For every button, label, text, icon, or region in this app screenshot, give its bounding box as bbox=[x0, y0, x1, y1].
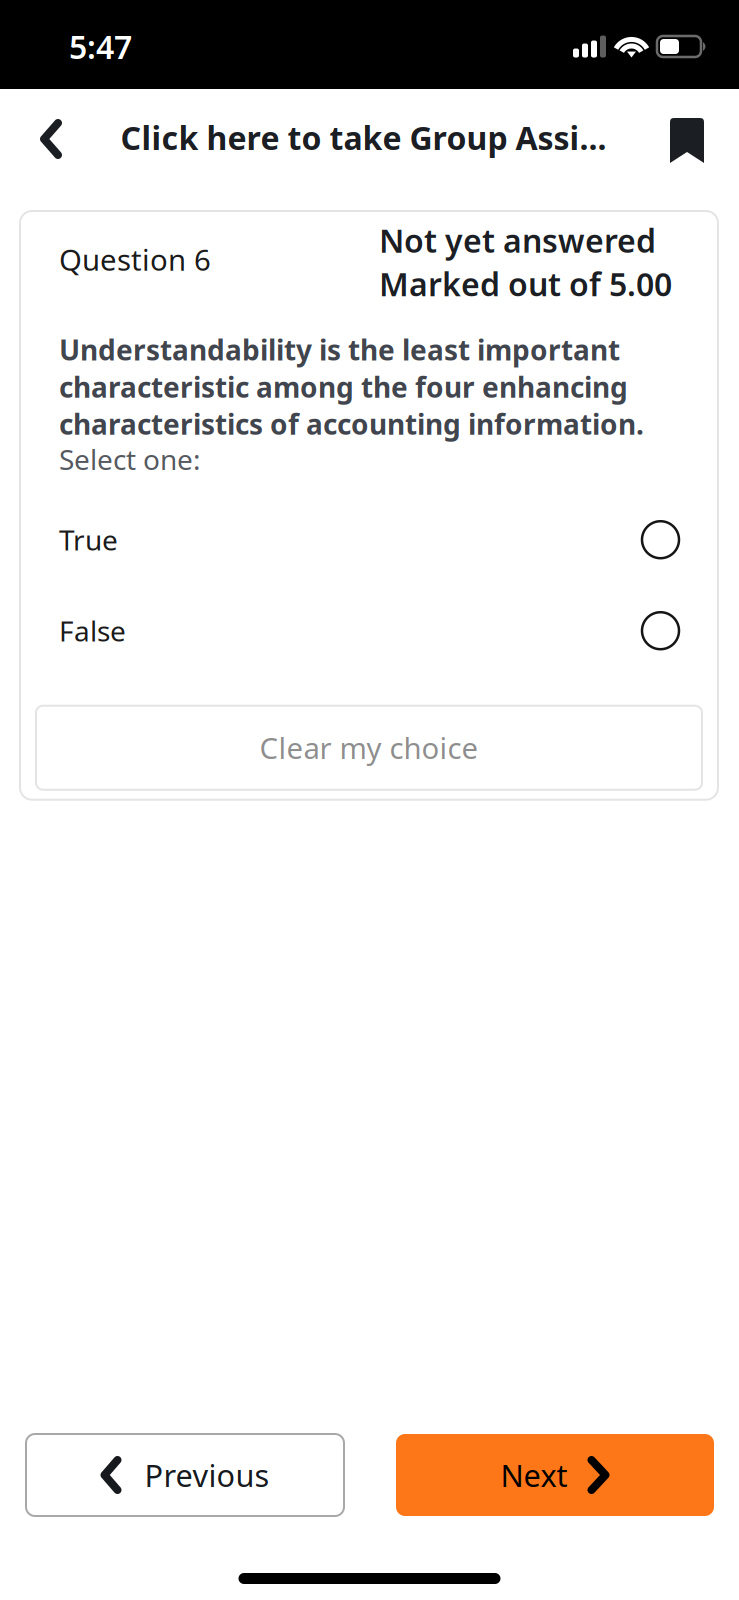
staticText: Question 6 bbox=[59, 240, 211, 279]
button[interactable]: Bookmark bbox=[635, 112, 739, 163]
button[interactable]: False bbox=[59, 606, 679, 656]
staticText: True bbox=[59, 521, 118, 558]
staticText: Clear my choice bbox=[259, 728, 478, 767]
staticText: False bbox=[59, 612, 126, 649]
button[interactable]: True bbox=[59, 515, 679, 565]
staticText: Not yet answered bbox=[379, 219, 656, 261]
staticText: 5:47 bbox=[69, 25, 132, 68]
button[interactable]: Next bbox=[396, 1434, 714, 1516]
button[interactable]: Previous bbox=[26, 1434, 344, 1516]
staticText: Marked out of 5.00 bbox=[379, 262, 672, 305]
button[interactable]: Back bbox=[0, 112, 102, 163]
staticText: Select one: bbox=[59, 440, 201, 478]
staticText: Previous bbox=[144, 1455, 269, 1495]
staticText: Click here to take Group Assi... bbox=[120, 116, 606, 159]
staticText: Understandability is the least important… bbox=[59, 331, 644, 442]
staticText: Next bbox=[500, 1455, 567, 1495]
button[interactable]: Clear my choice bbox=[36, 706, 702, 790]
